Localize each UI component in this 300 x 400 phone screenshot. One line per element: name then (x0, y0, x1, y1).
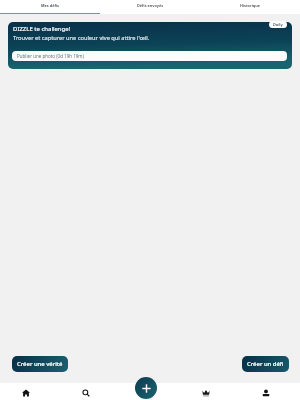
staticText: Mes défis (41, 3, 59, 8)
staticText: Défis envoyés (137, 3, 164, 8)
button[interactable]: Créer une vérité (12, 356, 68, 372)
staticText: Publier une photo (0d 19h 19m) (17, 53, 84, 59)
button[interactable]: Leaderboard (180, 383, 240, 400)
button[interactable]: Historique (200, 0, 300, 14)
button[interactable]: Mes défis (0, 0, 100, 14)
staticText: DIZZLE te challenge! (13, 25, 71, 33)
staticText: Créer un défi (247, 360, 284, 368)
button[interactable]: Créer un défi (242, 356, 289, 372)
button[interactable]: Publier une photo (0d 19h 19m) (12, 51, 287, 61)
staticText: Historique (240, 3, 260, 8)
button[interactable]: Profile (240, 383, 300, 400)
button[interactable]: Défis envoyés (100, 0, 200, 14)
button[interactable]: Search (60, 383, 120, 400)
button[interactable]: Home (0, 383, 60, 400)
staticText: Daily (273, 22, 283, 27)
staticText: Créer une vérité (17, 360, 63, 368)
button[interactable]: Add (135, 377, 157, 399)
staticText: Trouver et capturer une couleur vive qui… (13, 34, 150, 42)
